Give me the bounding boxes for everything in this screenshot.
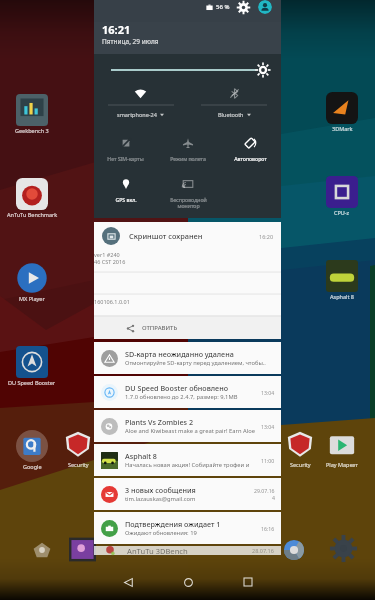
staticText: 16:16 (261, 525, 275, 532)
staticText: 3 новых сообщения (125, 485, 196, 495)
button[interactable]: Recent apps (230, 564, 266, 600)
staticText: AnTuTu 3DBench (127, 546, 188, 555)
staticText: GPS вкл. (115, 196, 137, 203)
staticText: Беспроводной монитор (170, 196, 207, 210)
staticText: Скриншот сохранен (129, 231, 259, 241)
button[interactable]: AnTuTu Benchmark (4, 178, 60, 218)
staticText: ver1 #240 (94, 251, 120, 258)
staticText: Bluetooth (218, 111, 244, 118)
button[interactable]: AnTuTu 3DBench (94, 546, 281, 555)
button[interactable]: Photos (69, 536, 96, 563)
staticText: Началась новая акция! Собирайте трофеи и… (125, 461, 258, 469)
button[interactable]: Режим полета (157, 133, 219, 167)
staticText: 160106.1.0.01 (94, 298, 130, 305)
staticText: Google (23, 463, 42, 470)
button[interactable]: Security (272, 428, 328, 468)
button[interactable]: Asphalt 8 (314, 260, 370, 300)
button[interactable]: Беспроводной монитор (157, 174, 219, 214)
staticText: Security (290, 461, 311, 468)
button[interactable]: Home (170, 564, 206, 600)
button[interactable]: Нет SIM-карты (94, 133, 157, 167)
button[interactable]: User account (258, 0, 272, 14)
staticText: 46 CST 2016 (94, 258, 126, 265)
staticText: 1.7.0 обновлено до 2.4.7, размер: 9,1MB (125, 393, 238, 401)
staticText: 4 (272, 494, 275, 501)
staticText: Security (68, 461, 89, 468)
button[interactable]: Settings (237, 1, 250, 14)
staticText: Нет SIM-карты (107, 155, 144, 162)
button[interactable]: Security (50, 428, 106, 468)
staticText: Geekbench 3 (15, 127, 49, 134)
button[interactable]: 3 новых сообщения (94, 478, 281, 510)
staticText: 56 % (216, 3, 230, 11)
button[interactable]: Chrome (282, 538, 306, 562)
button[interactable]: Back (110, 564, 146, 600)
staticText: 11:00 (261, 457, 275, 464)
button[interactable]: DU Speed Booster (4, 346, 60, 386)
staticText: Отмонтируйте SD-карту перед удалением, ч… (125, 359, 266, 367)
staticText: Пятница, 29 июля (102, 37, 159, 46)
button[interactable]: Brightness (256, 63, 270, 77)
staticText: MX Player (19, 295, 45, 302)
staticText: SD-карта неожиданно удалена (125, 349, 234, 359)
button[interactable]: GPS вкл. (94, 174, 157, 214)
button[interactable]: Bluetooth (187, 83, 281, 127)
staticText: 13:04 (261, 389, 275, 396)
button[interactable]: Gallery (30, 538, 54, 562)
staticText: 13:04 (261, 423, 275, 430)
staticText: Ожидают обновления: 19 (125, 529, 197, 537)
staticText: DU Speed Booster (8, 379, 56, 386)
button[interactable]: Settings (331, 536, 356, 561)
staticText: Asphalt 8 (125, 451, 157, 461)
staticText: CPU-z (334, 209, 350, 216)
button[interactable]: 3DMark (314, 92, 370, 132)
staticText: Режим полета (170, 155, 206, 162)
staticText: 16:21 (102, 22, 131, 37)
button[interactable]: Google (4, 430, 60, 470)
staticText: Подтверждения ожидает 1 обновлен.. (125, 519, 258, 529)
staticText: Автоповорот (234, 155, 267, 162)
staticText: Play Маркет (326, 461, 358, 468)
button[interactable]: Asphalt 8 (94, 444, 281, 476)
button[interactable]: Скриншот сохранен (94, 222, 281, 339)
staticText: 29.07.16 (254, 487, 275, 494)
staticText: 16:20 (259, 233, 274, 240)
staticText: 3DMark (332, 125, 353, 132)
staticText: tim.lazauskas@gmail.com (125, 495, 196, 503)
staticText: smartphone-24 (117, 111, 157, 118)
button[interactable]: Подтверждения ожидает 1 обновлен.. (94, 512, 281, 544)
staticText: Plants Vs Zombies 2 (125, 417, 194, 427)
staticText: AnTuTu Benchmark (7, 211, 58, 218)
button[interactable]: MX Player (4, 262, 60, 302)
staticText: 28.07.16 (252, 547, 274, 554)
button[interactable]: Автоповорот (219, 133, 281, 167)
button[interactable]: DU Speed Booster обновлено (94, 376, 281, 408)
button[interactable]: SD-карта неожиданно удалена (94, 342, 281, 374)
button[interactable]: CPU-z (314, 176, 370, 216)
button[interactable]: Plants Vs Zombies 2 (94, 410, 281, 442)
button[interactable]: Play Маркет (314, 428, 370, 468)
button[interactable]: Geekbench 3 (4, 94, 60, 134)
staticText: Asphalt 8 (330, 293, 354, 300)
staticText: DU Speed Booster обновлено (125, 383, 228, 393)
button[interactable]: ОТПРАВИТЬ (94, 317, 281, 339)
button[interactable]: smartphone-24 (94, 83, 187, 127)
staticText: ОТПРАВИТЬ (142, 324, 178, 332)
staticText: Aloe and Kiwibeast make a great pair! Ea… (125, 427, 258, 435)
